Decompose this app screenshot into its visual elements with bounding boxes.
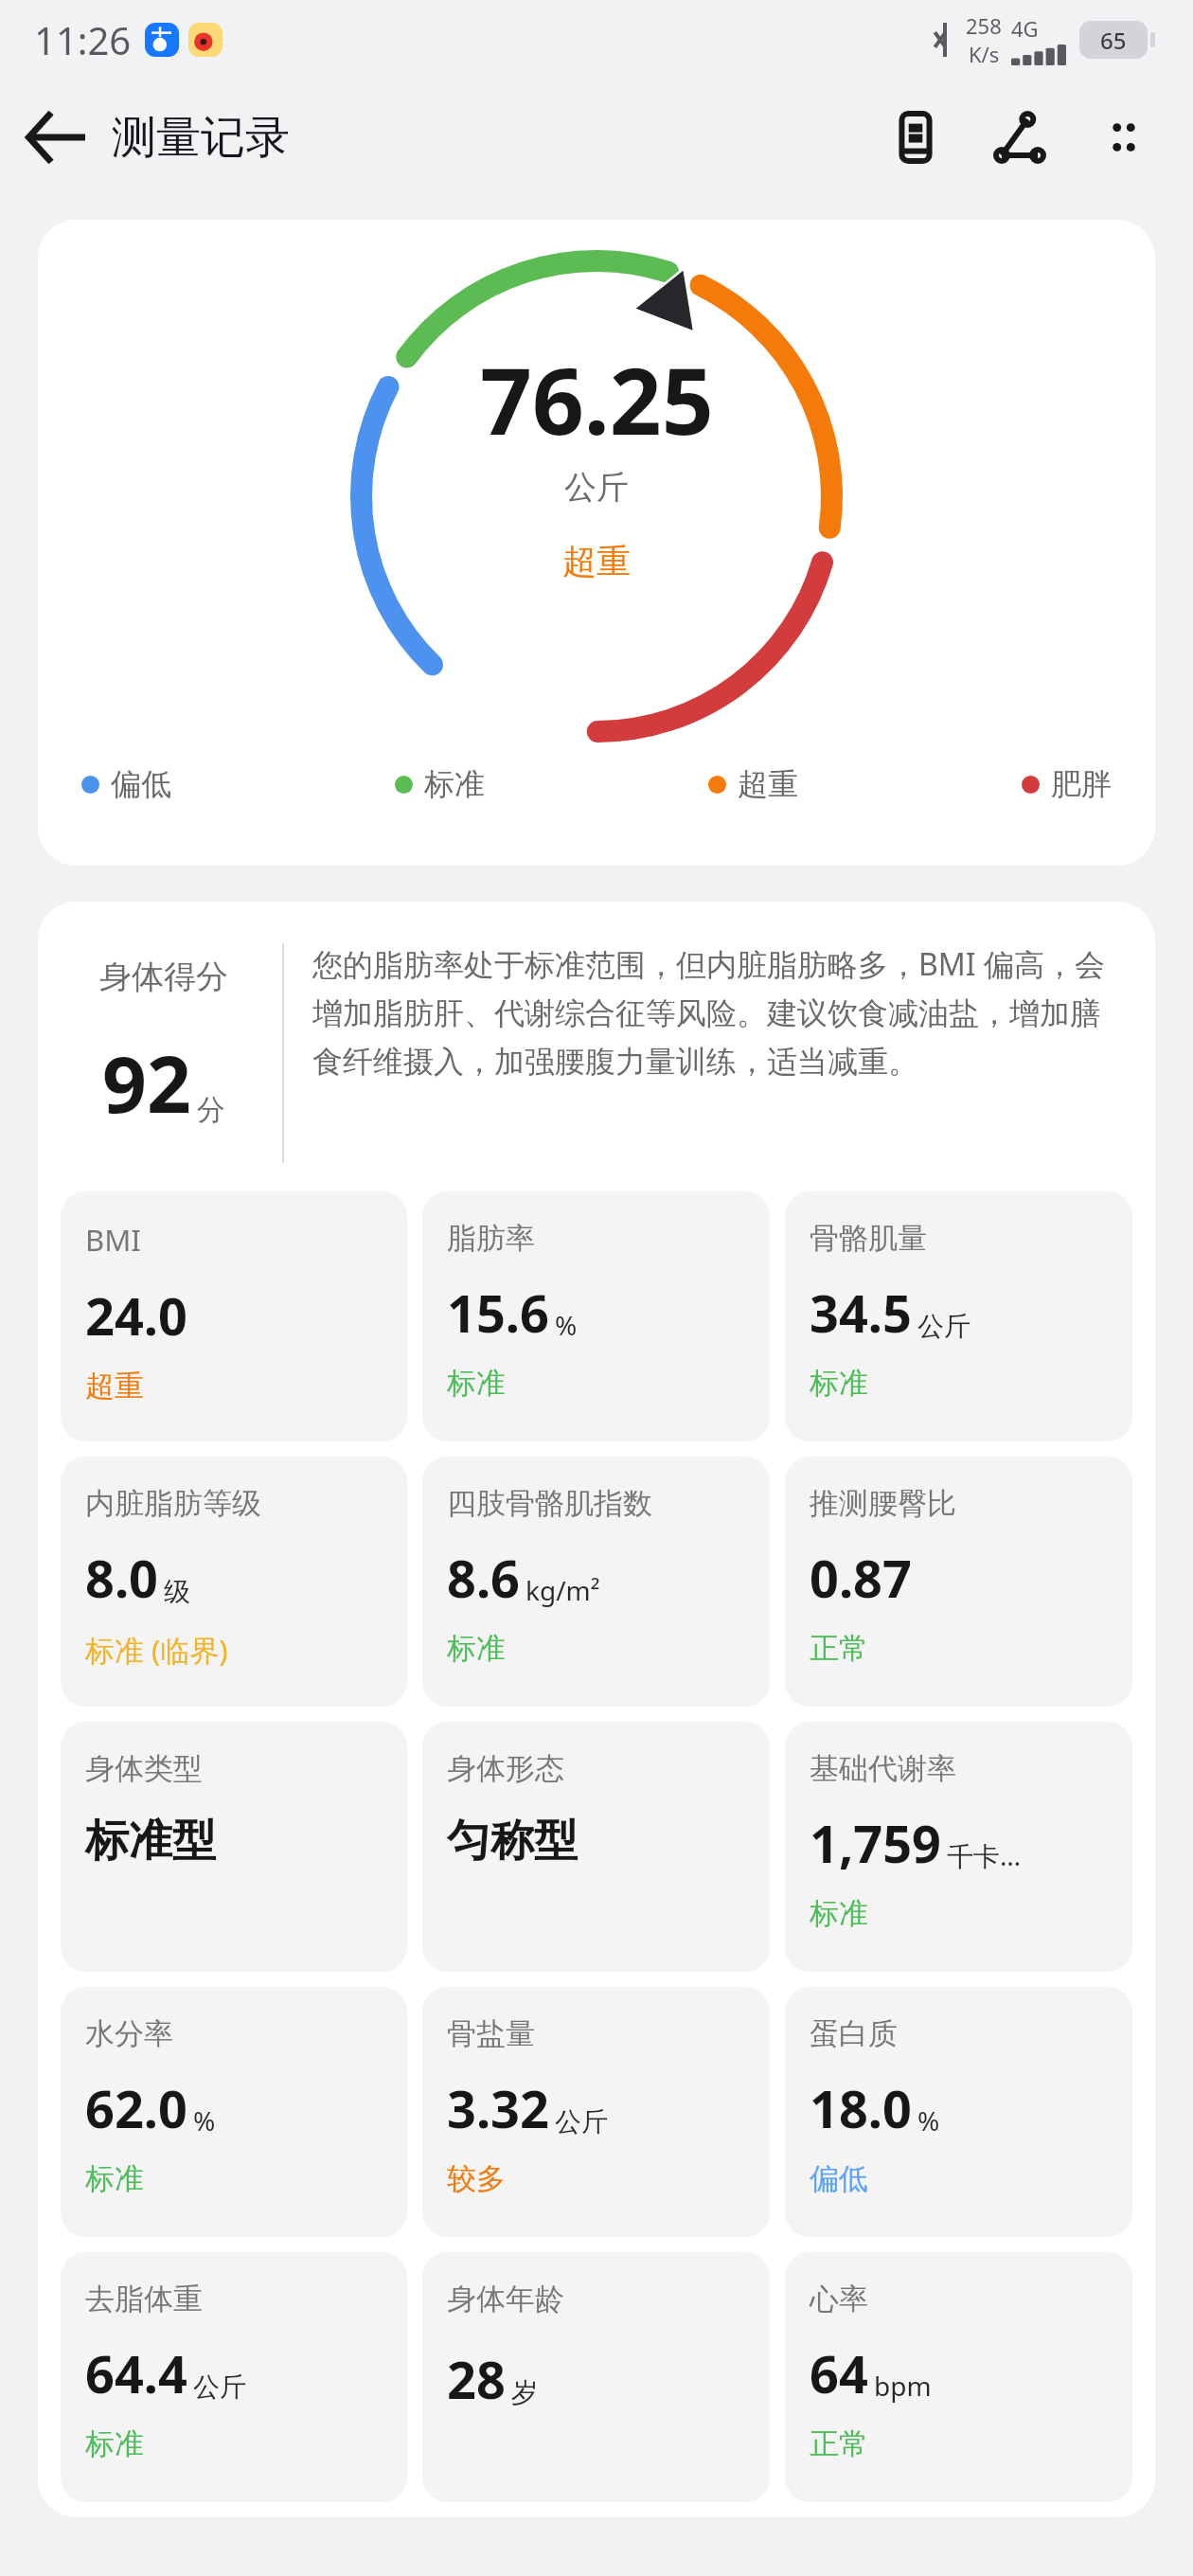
staticText: 超重 [85,1368,144,1404]
staticText: 标准 [810,1895,868,1932]
staticText: 推测腰臀比 [810,1485,956,1522]
staticText: 脂肪率 [447,1220,535,1257]
staticText: 标准 [447,1630,506,1667]
staticText: 较多 [447,2160,506,2197]
staticText: 偏低 [111,765,171,803]
staticText: 心率 [810,2281,868,2317]
staticText: % [555,1307,578,1343]
staticText: 分 [197,1092,225,1128]
staticText: 超重 [738,765,798,803]
staticText: 标准 [85,2425,144,2462]
staticText: 76.25 [480,337,714,461]
staticText: 水分率 [85,2015,173,2052]
staticText: 身体形态 [447,1750,564,1787]
staticText: 骨骼肌量 [810,1220,927,1257]
staticText: 基础代谢率 [810,1750,956,1787]
button[interactable]: 脂肪率 [422,1191,770,1441]
staticText: % [193,2102,216,2138]
staticText: 65 [1100,25,1127,56]
staticText: K/s [969,40,1000,68]
staticText: 11:26 [34,14,132,65]
staticText: 四肢骨骼肌指数 [447,1485,652,1522]
staticText: 测量记录 [112,110,290,166]
button[interactable]: 蛋白质 [785,1987,1132,2237]
staticText: 公斤 [193,2370,246,2404]
staticText: bpm [874,2368,932,2404]
staticText: 公斤 [917,1310,970,1343]
button[interactable]: 基础代谢率 [785,1722,1132,1972]
button[interactable]: 76.25 [38,220,1155,866]
staticText: kg/m² [525,1572,600,1608]
staticText: BMI [85,1220,141,1260]
staticText: 身体年龄 [447,2281,564,2317]
staticText: 15.6 [447,1278,549,1348]
staticText: 92 [102,1029,191,1136]
staticText: 18.0 [810,2073,912,2143]
staticText: 标准 [447,1365,506,1402]
staticText: 匀称型 [447,1814,578,1869]
button[interactable]: 标准 [395,758,485,811]
staticText: 公斤 [555,2105,608,2138]
staticText: 0.87 [810,1543,912,1613]
staticText: 正常 [810,2425,868,2462]
button[interactable]: 骨盐量 [422,1987,770,2237]
staticText: 身体类型 [85,1750,203,1787]
staticText: 62.0 [85,2073,187,2143]
staticText: 标准 [424,765,485,803]
staticText: 去脂体重 [85,2281,203,2317]
button[interactable]: Share [968,80,1072,195]
staticText: 级 [164,1575,190,1608]
staticText: 标准 (临界) [85,1630,228,1670]
staticText: 超重 [562,540,631,582]
staticText: 1,759 [810,1808,941,1878]
staticText: 258 [966,11,1002,40]
staticText: 标准 [810,1365,868,1402]
button[interactable]: 骨骼肌量 [785,1191,1132,1441]
staticText: % [917,2102,940,2138]
staticText: 3.32 [447,2073,549,2143]
staticText: 公斤 [564,467,629,508]
staticText: 8.6 [447,1543,520,1613]
staticText: 千卡… [947,1837,1022,1873]
staticText: 蛋白质 [810,2015,898,2052]
staticText: 您的脂肪率处于标准范围，但内脏脂肪略多，BMI 偏高，会增加脂肪肝、代谢综合征等… [312,943,1121,1082]
staticText: 偏低 [810,2160,868,2197]
staticText: 标准 [85,2160,144,2197]
button[interactable]: Back [0,80,112,195]
button[interactable]: 内脏脂肪等级 [61,1457,407,1707]
button[interactable]: 肥胖 [1022,758,1112,811]
staticText: 正常 [810,1630,868,1667]
button[interactable]: 水分率 [61,1987,407,2237]
button[interactable]: 超重 [708,758,798,811]
staticText: 24.0 [85,1280,187,1351]
button[interactable]: 推测腰臀比 [785,1457,1132,1707]
button[interactable]: 身体年龄 [422,2252,770,2502]
button[interactable]: BMI [61,1191,407,1441]
staticText: 64.4 [85,2338,187,2408]
staticText: 4G [1011,14,1039,43]
button[interactable]: Records [864,80,968,195]
button[interactable]: 去脂体重 [61,2252,407,2502]
staticText: 34.5 [810,1278,912,1348]
staticText: 28 [447,2344,506,2414]
staticText: 肥胖 [1051,765,1112,803]
staticText: 岁 [511,2376,538,2409]
staticText: 内脏脂肪等级 [85,1485,261,1522]
button[interactable]: 心率 [785,2252,1132,2502]
staticText: 身体得分 [99,957,228,997]
staticText: 骨盐量 [447,2015,535,2052]
button[interactable]: 四肢骨骼肌指数 [422,1457,770,1707]
staticText: 64 [810,2338,868,2408]
staticText: 标准型 [85,1814,216,1869]
button[interactable]: 身体形态 [422,1722,770,1972]
staticText: 8.0 [85,1543,158,1613]
button[interactable]: More options [1072,80,1176,195]
button[interactable]: 身体类型 [61,1722,407,1972]
button[interactable]: 偏低 [81,758,171,811]
